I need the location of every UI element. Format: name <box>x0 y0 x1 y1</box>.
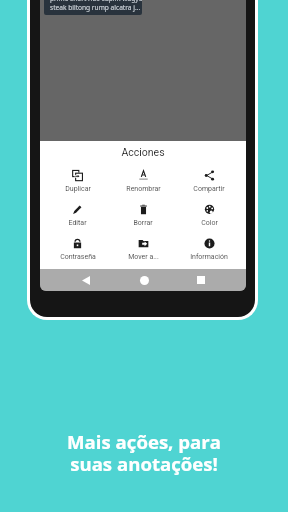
staticText: Mais ações, para suas anotações! <box>0 429 288 476</box>
button[interactable]: Duplicar <box>45 164 110 198</box>
button[interactable]: Back <box>73 269 99 291</box>
staticText: Borrar <box>133 219 153 227</box>
button[interactable]: Editar <box>45 198 110 232</box>
staticText: prime short ribs cupim wagyu steak bilto… <box>50 0 142 12</box>
button[interactable]: Renombrar <box>110 164 176 198</box>
button[interactable]: Contraseña <box>45 232 110 266</box>
staticText: Editar <box>68 219 87 227</box>
staticText: Color <box>201 219 218 227</box>
button[interactable]: Home <box>131 269 157 291</box>
button[interactable]: Color <box>176 198 242 232</box>
button[interactable]: Compartir <box>176 164 242 198</box>
staticText: Información <box>190 253 228 261</box>
staticText: Renombrar <box>126 185 161 193</box>
button[interactable]: Recent apps <box>188 269 214 291</box>
staticText: Contraseña <box>60 253 96 261</box>
staticText: Acciones <box>40 146 246 158</box>
staticText: Mover a... <box>128 253 159 261</box>
staticText: Duplicar <box>65 185 91 193</box>
button[interactable]: Información <box>176 232 242 266</box>
staticText: Compartir <box>193 185 225 193</box>
button[interactable]: Borrar <box>110 198 176 232</box>
button[interactable]: Mover a... <box>110 232 176 266</box>
